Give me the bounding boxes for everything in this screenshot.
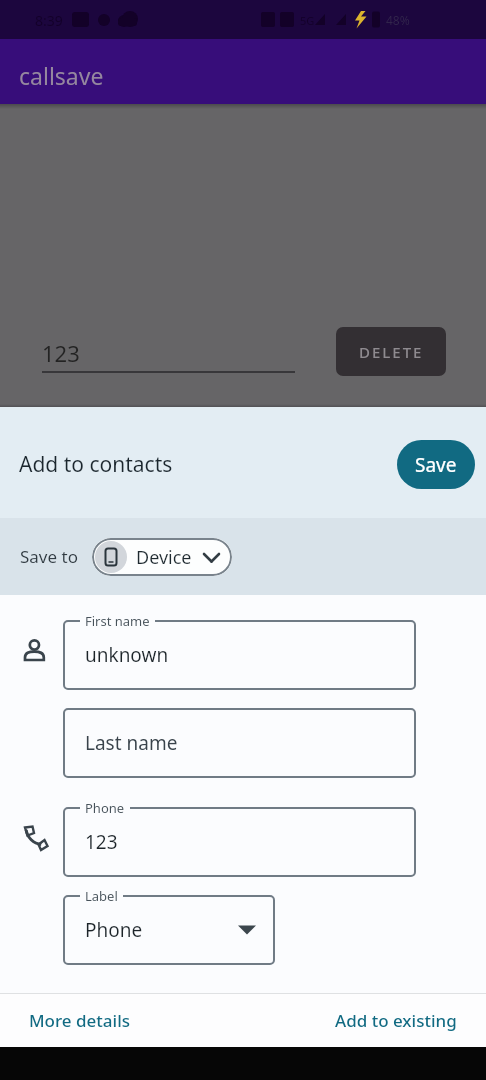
staticText: Device: [136, 545, 192, 570]
button[interactable]: 123: [42, 332, 295, 373]
staticText: Phone: [85, 917, 143, 943]
staticText: callsave: [19, 60, 104, 91]
staticText: Save to: [20, 545, 78, 568]
button[interactable]: Last name: [63, 708, 416, 778]
button[interactable]: Add to existing: [335, 1009, 457, 1032]
button[interactable]: DELETE: [336, 327, 446, 376]
staticText: unknown: [85, 642, 169, 668]
staticText: 123: [42, 338, 80, 368]
button[interactable]: unknown: [63, 620, 416, 690]
staticText: 5G: [300, 13, 315, 28]
button[interactable]: Phone: [63, 895, 275, 965]
staticText: 123: [85, 829, 118, 855]
staticText: Add to contacts: [19, 450, 173, 479]
staticText: 8:39: [35, 11, 63, 30]
staticText: First name: [85, 612, 150, 630]
staticText: Label: [85, 887, 118, 905]
staticText: Last name: [85, 730, 178, 756]
staticText: 48%: [386, 12, 410, 28]
staticText: Phone: [85, 799, 125, 817]
staticText: Save: [415, 452, 457, 478]
button[interactable]: 123: [63, 807, 416, 877]
button[interactable]: Device: [92, 538, 232, 576]
staticText: DELETE: [359, 342, 424, 362]
button[interactable]: More details: [29, 1009, 130, 1032]
button[interactable]: Save: [397, 440, 475, 489]
